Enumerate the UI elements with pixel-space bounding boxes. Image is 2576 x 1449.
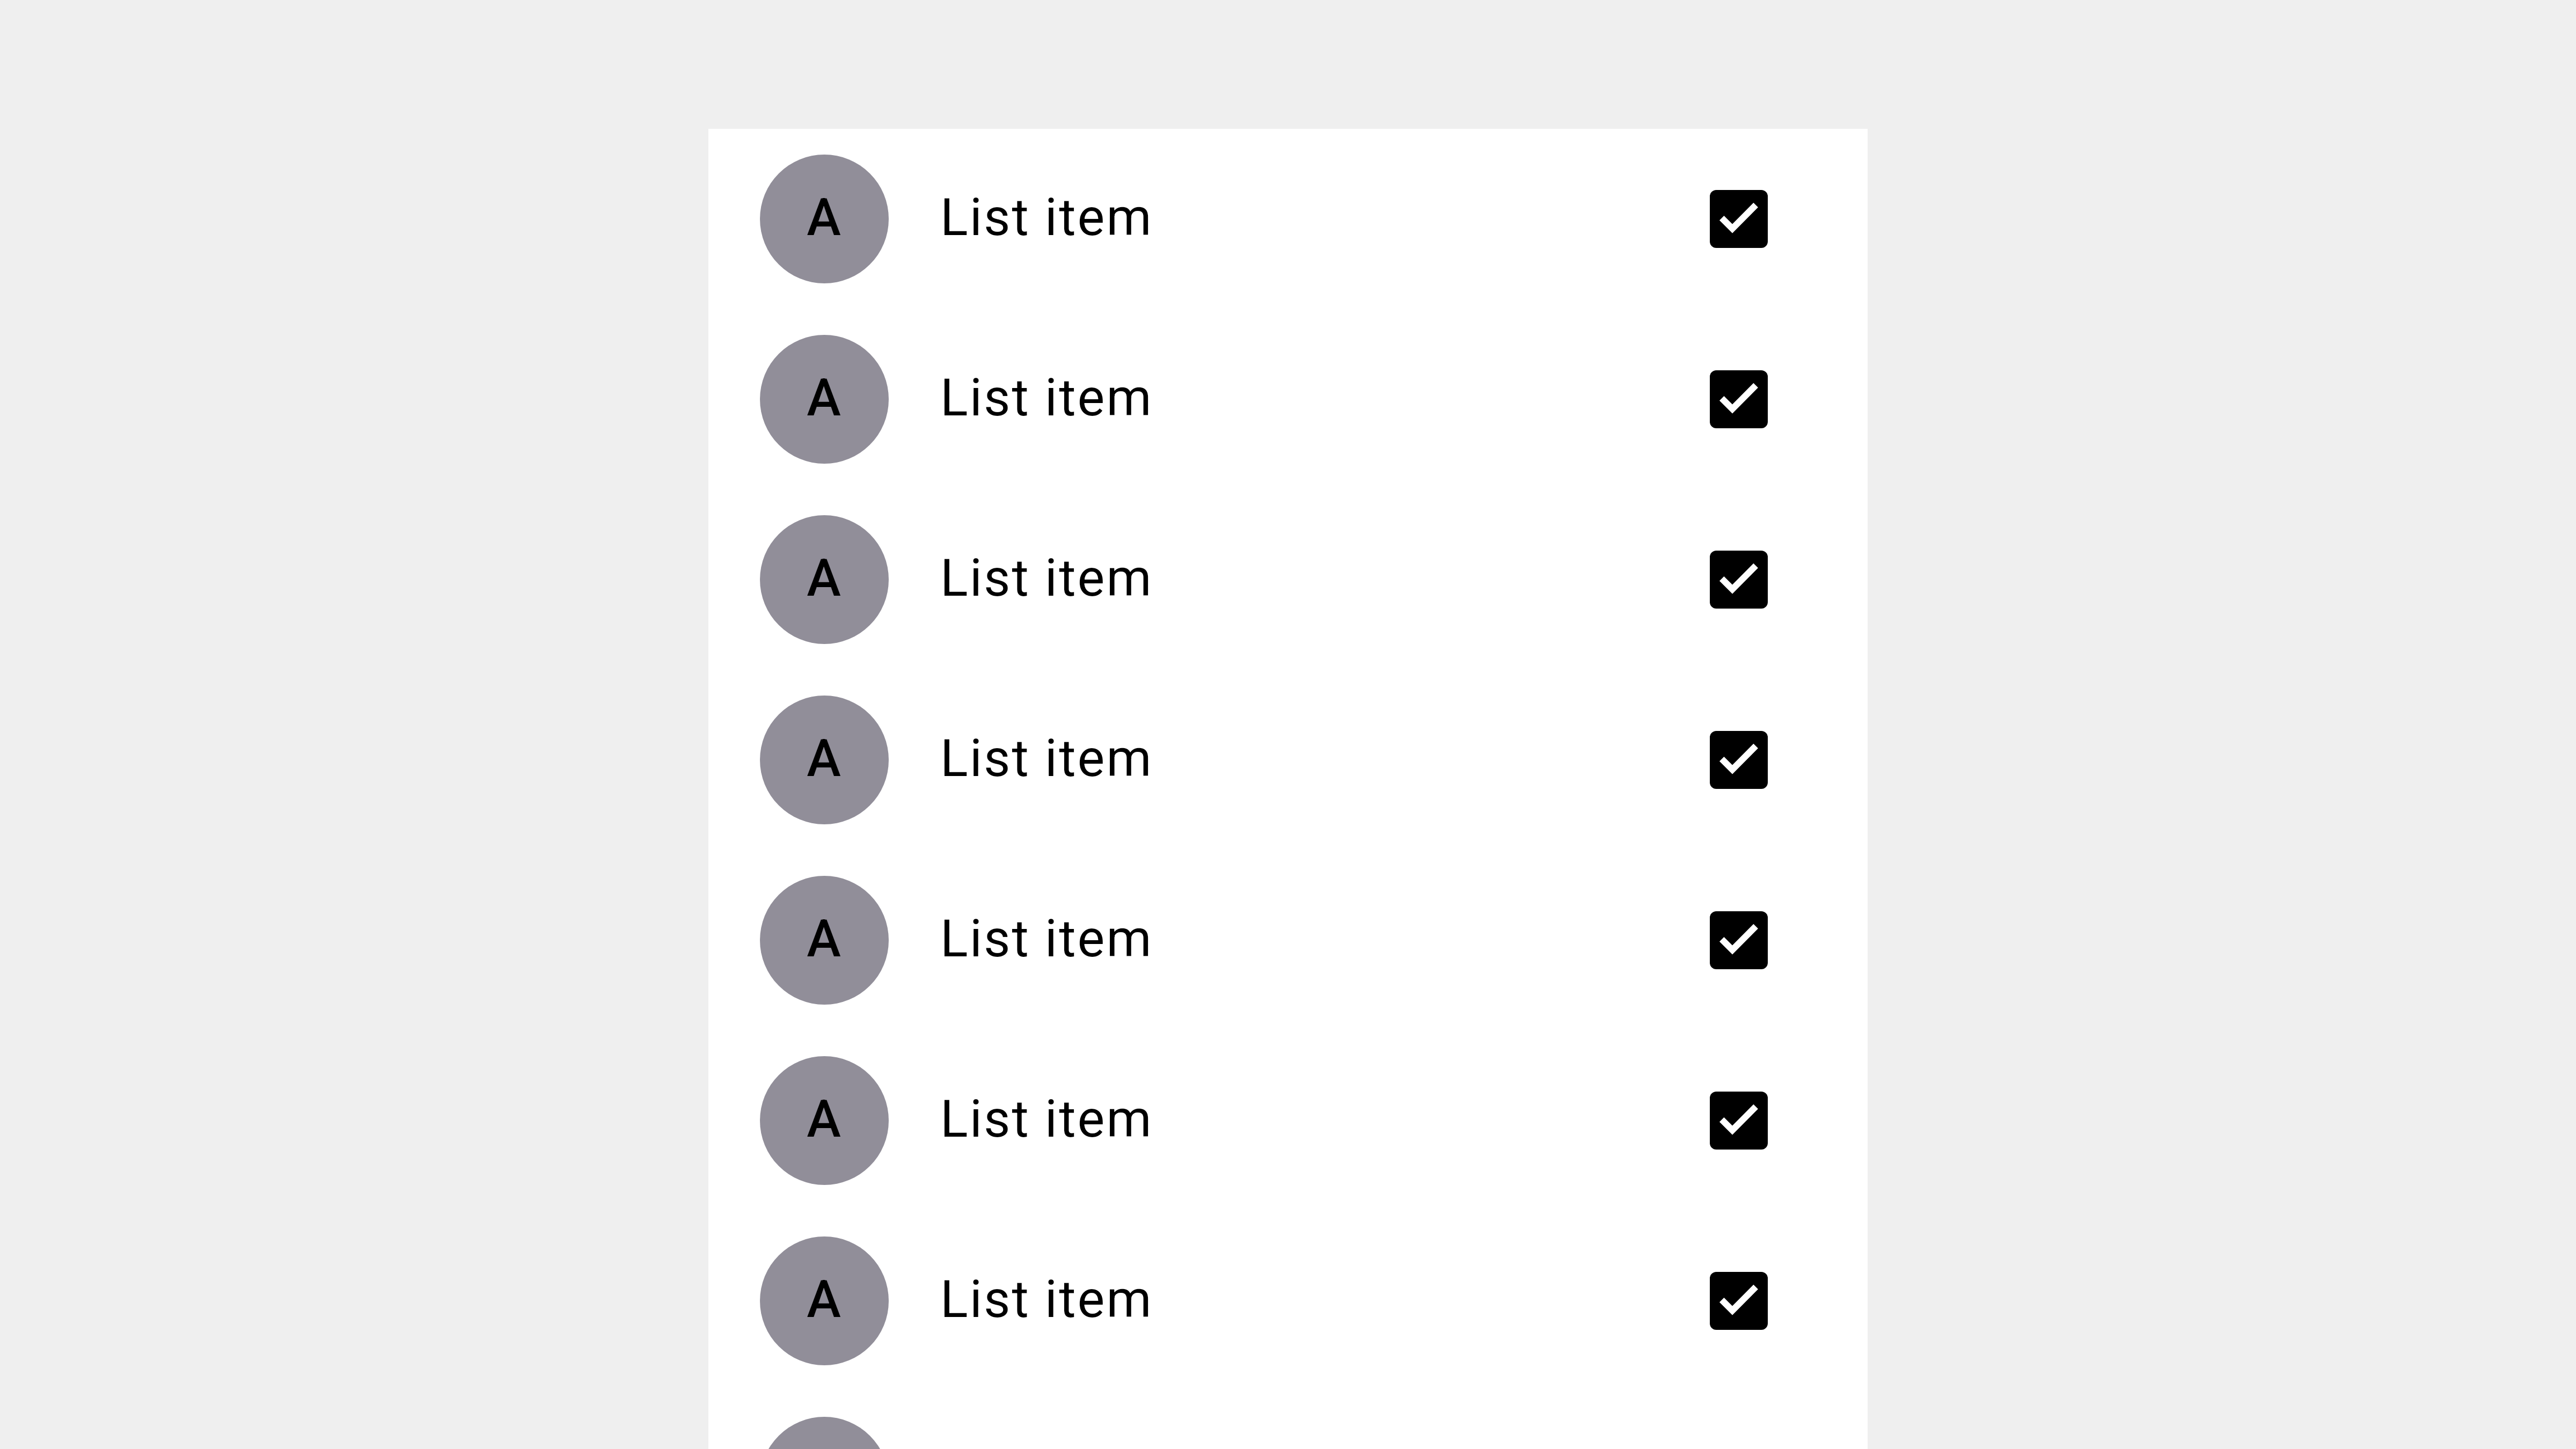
- staticText: A: [807, 187, 843, 248]
- staticText: List item: [940, 909, 1662, 969]
- button[interactable]: A: [708, 309, 1868, 489]
- button[interactable]: Checked, toggle selection: [1662, 142, 1816, 296]
- staticText: List item: [940, 368, 1662, 428]
- button[interactable]: Checked, toggle selection: [1662, 683, 1816, 837]
- button[interactable]: A: [708, 1211, 1868, 1391]
- staticText: List item: [940, 187, 1662, 248]
- staticText: List item: [940, 548, 1662, 609]
- button[interactable]: A: [708, 670, 1868, 850]
- staticText: A: [807, 1089, 843, 1150]
- staticText: A: [807, 728, 843, 789]
- button[interactable]: A: [708, 850, 1868, 1030]
- button[interactable]: Checked, toggle selection: [1662, 863, 1816, 1018]
- staticText: A: [807, 368, 843, 428]
- button[interactable]: Checked, toggle selection: [1662, 502, 1816, 657]
- staticText: List item: [940, 728, 1662, 789]
- button[interactable]: A: [708, 1391, 1868, 1449]
- button[interactable]: A: [708, 489, 1868, 670]
- button[interactable]: Checked, toggle selection: [1662, 1224, 1816, 1378]
- button[interactable]: A: [708, 129, 1868, 309]
- staticText: A: [807, 548, 843, 609]
- staticText: A: [807, 909, 843, 969]
- button[interactable]: Checked, toggle selection: [1662, 322, 1816, 477]
- staticText: List item: [940, 1269, 1662, 1330]
- button[interactable]: A: [708, 1030, 1868, 1211]
- button[interactable]: Checked, toggle selection: [1662, 1043, 1816, 1198]
- staticText: A: [807, 1269, 843, 1330]
- staticText: List item: [940, 1089, 1662, 1150]
